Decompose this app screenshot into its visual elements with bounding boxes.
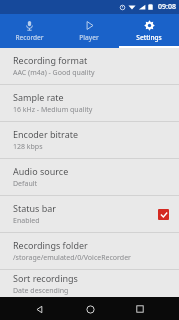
staticText: 128 kbps <box>13 142 43 152</box>
button[interactable]: Settings <box>119 14 179 48</box>
staticText: Encoder bitrate <box>13 128 79 140</box>
staticText: Recorder <box>15 33 44 42</box>
button[interactable]: Recents <box>129 298 151 320</box>
button[interactable]: Home <box>79 298 101 320</box>
staticText: Enabled <box>13 216 40 226</box>
button[interactable]: Sort recordings <box>0 270 179 297</box>
staticText: Sample rate <box>13 91 64 103</box>
staticText: Status bar <box>13 202 57 214</box>
staticText: Date descending <box>13 286 69 296</box>
button[interactable]: Status bar <box>0 196 179 232</box>
button[interactable]: Sample rate <box>0 85 179 121</box>
staticText: Settings <box>136 33 162 42</box>
staticText: Recordings folder <box>13 239 88 251</box>
other: Status bar enabled <box>158 209 169 220</box>
staticText: 09:08 <box>158 2 176 12</box>
staticText: Recording format <box>13 54 88 66</box>
staticText: Player <box>79 33 99 42</box>
staticText: /storage/emulated/0/VoiceRecorder <box>13 253 131 263</box>
button[interactable]: Recorder <box>0 14 59 48</box>
button[interactable]: Recording format <box>0 48 179 84</box>
button[interactable]: Encoder bitrate <box>0 122 179 158</box>
button[interactable]: Back <box>28 298 50 320</box>
staticText: Audio source <box>13 165 69 177</box>
button[interactable]: Recordings folder <box>0 233 179 269</box>
staticText: Sort recordings <box>13 272 78 284</box>
staticText: Default <box>13 179 38 189</box>
staticText: 16 kHz - Medium quality <box>13 105 93 115</box>
staticText: AAC (m4a) - Good quality <box>13 68 95 78</box>
button[interactable]: Player <box>59 14 119 48</box>
button[interactable]: Audio source <box>0 159 179 195</box>
